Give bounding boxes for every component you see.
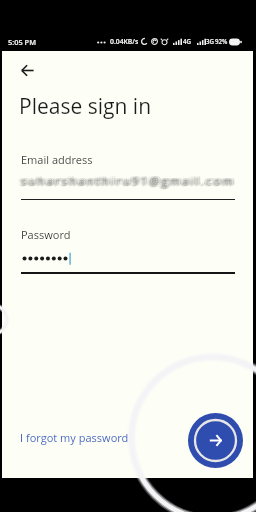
staticText: Please sign in [19,92,152,121]
staticText: suharshanthiru91@gmail.com [19,172,234,187]
button[interactable]: Back [9,52,45,88]
staticText: 3G [206,37,215,45]
staticText: suharshanthiru91@gmail.com [19,174,234,189]
staticText: Email address [21,152,93,167]
button[interactable]: Sign in [188,413,243,468]
staticText: suharshanthiru91@gmail.com [20,173,235,188]
staticText: Password [21,227,71,242]
staticText: 0.04KB/s [110,37,139,46]
button[interactable]: I forgot my password [17,428,132,447]
staticText: suharshanthiru91@gmail.com [20,174,235,189]
staticText: suharshanthiru91@gmail.com [23,174,238,189]
staticText: I forgot my password [20,430,129,445]
staticText: suharshanthiru91@gmail.com [23,172,238,187]
staticText: suharshanthiru91@gmail.com [23,172,238,187]
staticText: 4G [183,37,192,45]
staticText: suharshanthiru91@gmail.com [21,174,236,189]
staticText: suharshanthiru91@gmail.com [21,174,236,189]
staticText: suharshanthiru91@gmail.com [18,173,233,188]
staticText: suharshanthiru91@gmail.com [24,173,239,188]
staticText: suharshanthiru91@gmail.com [21,173,236,188]
staticText: 92% [215,37,228,45]
staticText: suharshanthiru91@gmail.com [22,173,237,188]
staticText: 5:05 PM [8,37,36,47]
staticText: suharshanthiru91@gmail.com [20,175,235,190]
staticText: suharshanthiru91@gmail.com [22,174,237,189]
staticText: suharshanthiru91@gmail.com [21,172,236,187]
